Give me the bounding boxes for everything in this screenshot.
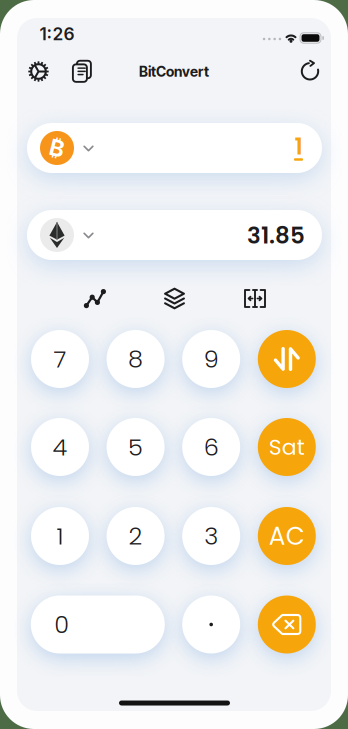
button[interactable]: 5 bbox=[107, 418, 165, 476]
button[interactable] bbox=[237, 282, 273, 314]
button[interactable]: Sat bbox=[258, 418, 316, 476]
staticText: Sat bbox=[269, 432, 305, 462]
staticText: 6 bbox=[204, 430, 219, 464]
button[interactable] bbox=[23, 56, 53, 86]
button[interactable]: 6 bbox=[182, 418, 240, 476]
button[interactable]: 0 bbox=[31, 595, 165, 653]
button[interactable]: 1 bbox=[31, 507, 89, 565]
staticText: 2 bbox=[129, 519, 143, 553]
staticText: BitConvert bbox=[139, 63, 209, 80]
staticText: 1 bbox=[294, 130, 302, 162]
button[interactable]: 7 bbox=[31, 330, 89, 388]
button[interactable]: 3 bbox=[182, 507, 240, 565]
staticText: 7 bbox=[53, 342, 66, 376]
staticText: 5 bbox=[128, 430, 143, 464]
button[interactable] bbox=[295, 55, 325, 85]
staticText: ₿ bbox=[49, 135, 64, 161]
staticText: 1:26 bbox=[39, 24, 74, 44]
button[interactable] bbox=[66, 56, 96, 86]
button[interactable]: 2 bbox=[107, 507, 165, 565]
button[interactable]: AC bbox=[258, 507, 316, 565]
staticText: 31.85 bbox=[247, 219, 305, 251]
staticText: 9 bbox=[204, 342, 219, 376]
button[interactable]: 4 bbox=[31, 418, 89, 476]
button[interactable] bbox=[258, 330, 316, 388]
button[interactable]: 31.85 bbox=[27, 210, 322, 260]
staticText: 3 bbox=[204, 519, 218, 553]
button[interactable]: 8 bbox=[107, 330, 165, 388]
button[interactable] bbox=[182, 595, 240, 653]
button[interactable] bbox=[258, 595, 316, 653]
staticText: 1 bbox=[56, 519, 63, 553]
staticText: 4 bbox=[52, 430, 67, 464]
button[interactable]: ₿ bbox=[27, 123, 322, 173]
staticText: AC bbox=[269, 519, 305, 553]
button[interactable] bbox=[77, 282, 113, 314]
button[interactable] bbox=[156, 282, 192, 314]
staticText: 0 bbox=[54, 608, 69, 641]
button[interactable]: 9 bbox=[182, 330, 240, 388]
staticText: 8 bbox=[128, 342, 143, 376]
